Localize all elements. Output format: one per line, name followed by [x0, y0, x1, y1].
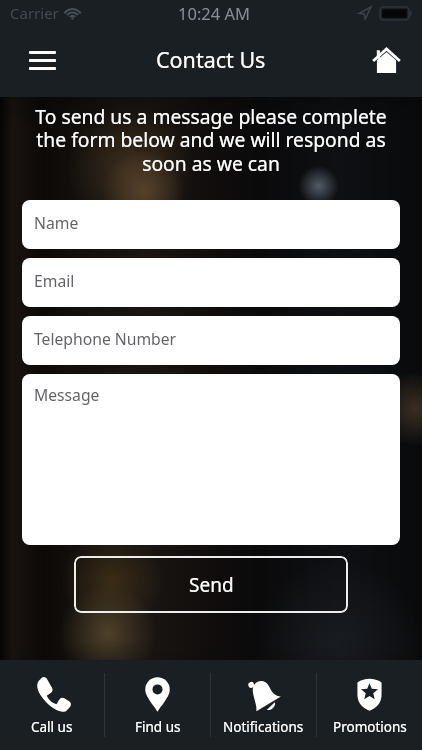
staticText: Name: [34, 212, 79, 233]
button[interactable]: Telephone Number: [22, 316, 400, 365]
staticText: Notifications: [223, 718, 304, 736]
button[interactable]: Call us: [0, 660, 104, 750]
staticText: Message: [34, 384, 100, 405]
staticText: Carrier: [10, 3, 59, 23]
button[interactable]: Home: [364, 38, 408, 82]
button[interactable]: Message: [22, 374, 400, 545]
staticText: Email: [34, 270, 75, 291]
staticText: Promotions: [333, 718, 407, 736]
staticText: Send: [189, 572, 234, 598]
button[interactable]: Notifications: [211, 660, 316, 750]
staticText: Telephone Number: [34, 328, 177, 349]
button[interactable]: Email: [22, 258, 400, 307]
button[interactable]: Promotions: [317, 660, 422, 750]
staticText: Contact Us: [156, 45, 266, 74]
button[interactable]: Send: [74, 556, 348, 613]
staticText: To send us a message please complete the…: [8, 103, 414, 177]
button[interactable]: Name: [22, 200, 400, 249]
button[interactable]: Find us: [105, 660, 210, 750]
staticText: Call us: [31, 718, 73, 736]
staticText: 10:24 AM: [178, 2, 250, 24]
staticText: Find us: [135, 718, 181, 736]
button[interactable]: Menu: [18, 36, 66, 84]
